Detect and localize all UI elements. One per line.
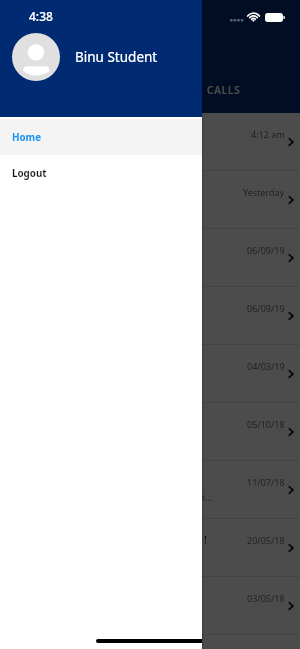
button[interactable]: Pathology session (0, 345, 300, 403)
staticText: Binu Student (75, 48, 158, 66)
staticText: Home (12, 131, 42, 144)
other: Open call details (288, 137, 294, 147)
button[interactable]: Microbiology class (0, 287, 300, 345)
other: Open call details (288, 601, 294, 611)
staticText: 06/09/19 (247, 244, 285, 256)
staticText: 05/10/18 (247, 418, 285, 430)
button[interactable]: Pharmacology doubts (0, 229, 300, 287)
staticText: 06/09/19 (247, 302, 285, 314)
staticText: 03/05/18 (247, 592, 285, 604)
staticText: 20/05/18 (247, 534, 285, 546)
staticText: 4:12 am (251, 128, 285, 140)
other: Open call details (288, 195, 294, 205)
other: Open call details (288, 485, 294, 495)
button[interactable]: Anatomy lecture (0, 113, 300, 171)
button[interactable]: Logout (0, 155, 202, 191)
button[interactable]: Home (0, 119, 202, 155)
button[interactable]: Forensic medicine quick revision set ! (0, 519, 300, 577)
other: Open call details (288, 369, 294, 379)
other: Open call details (288, 253, 294, 263)
button[interactable]: Physiology revision (0, 171, 300, 229)
staticText: Anatomy lecture (16, 126, 101, 141)
staticText: CALLS (207, 83, 241, 97)
staticText: 04/03/19 (247, 360, 285, 372)
staticText: Yesterday (243, 186, 285, 198)
button[interactable]: Biochemistry help (0, 403, 300, 461)
staticText: 11/07/18 (247, 476, 285, 488)
button[interactable] (0, 0, 300, 649)
other: Open call details (288, 543, 294, 553)
button[interactable]: Community medicine lecture notes (0, 461, 300, 519)
other: Open call details (288, 427, 294, 437)
staticText: Follow up about the last assignment and … (16, 491, 216, 503)
staticText: Forensic medicine quick revision set ! (16, 532, 207, 547)
button[interactable]: Surgery basics (0, 577, 300, 635)
other: Open call details (288, 311, 294, 321)
staticText: Logout (12, 167, 47, 180)
staticText: 4:38 (29, 8, 53, 24)
